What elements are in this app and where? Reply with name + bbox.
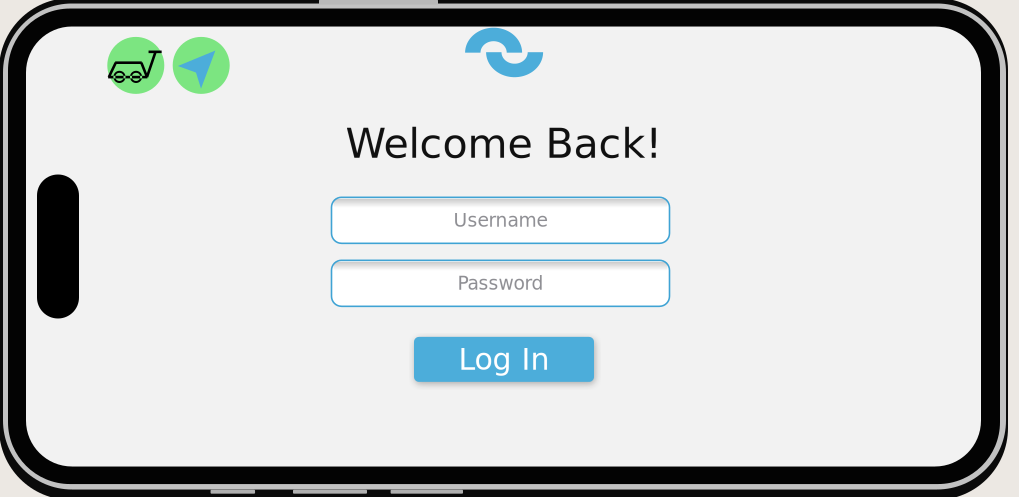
button[interactable]: Log In — [414, 337, 594, 382]
staticText: Log In — [458, 342, 549, 377]
staticText: Username — [453, 209, 547, 231]
button[interactable]: Password — [331, 260, 669, 306]
button[interactable]: Scooter — [107, 37, 164, 94]
button[interactable]: Navigate — [173, 37, 230, 94]
button[interactable]: Username — [331, 197, 669, 243]
staticText: Welcome Back! — [345, 120, 661, 167]
staticText: Password — [457, 272, 543, 294]
